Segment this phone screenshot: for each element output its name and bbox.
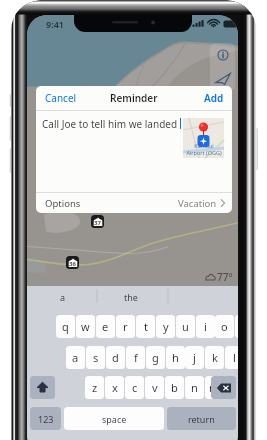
- staticText: Call Joe to tell him we landed: [42, 117, 178, 131]
- button[interactable]: Cancel: [36, 86, 86, 110]
- button[interactable]: Options: [36, 193, 232, 213]
- button[interactable]: b: [165, 376, 184, 399]
- button[interactable]: a: [66, 346, 85, 369]
- button[interactable]: o: [215, 315, 234, 338]
- button[interactable]: e: [96, 315, 115, 338]
- button[interactable]: m: [205, 376, 224, 399]
- button[interactable]: l: [225, 346, 238, 369]
- staticText: 77°: [217, 270, 233, 284]
- button[interactable]: Highway 36: [66, 256, 79, 269]
- staticText: g: [152, 350, 159, 365]
- staticText: o: [221, 319, 228, 334]
- staticText: k: [212, 350, 218, 365]
- button[interactable]: z: [85, 376, 104, 399]
- staticText: e: [102, 319, 109, 334]
- staticText: 123: [38, 413, 54, 425]
- staticText: Add: [204, 91, 224, 105]
- staticText: c: [132, 380, 138, 395]
- button[interactable]: t: [136, 315, 155, 338]
- button[interactable]: k: [205, 346, 224, 369]
- button[interactable]: 123: [30, 407, 61, 430]
- staticText: Reminder: [110, 91, 158, 105]
- staticText: d: [112, 350, 119, 365]
- staticText: v: [152, 380, 158, 395]
- staticText: u: [182, 319, 189, 334]
- staticText: a: [60, 291, 66, 303]
- button[interactable]: n: [185, 376, 204, 399]
- button[interactable]: v: [145, 376, 164, 399]
- staticText: 37: [94, 219, 101, 227]
- staticText: return: [188, 413, 215, 425]
- staticText: Airport (OGG): [186, 149, 222, 156]
- button[interactable]: u: [176, 315, 195, 338]
- staticText: i: [204, 319, 207, 334]
- button[interactable]: f: [126, 346, 145, 369]
- staticText: j: [193, 350, 196, 365]
- button[interactable]: Kahului Airport location: [183, 118, 224, 158]
- button[interactable]: c: [125, 376, 144, 399]
- staticText: z: [92, 380, 98, 395]
- staticText: w: [81, 319, 90, 334]
- staticText: q: [62, 319, 69, 334]
- staticText: 36: [69, 260, 76, 268]
- button[interactable]: y: [156, 315, 175, 338]
- staticText: Cancel: [45, 91, 77, 105]
- button[interactable]: r: [116, 315, 135, 338]
- staticText: 9:41: [46, 18, 64, 30]
- button[interactable]: g: [146, 346, 165, 369]
- staticText: Kahului: [194, 142, 214, 149]
- button[interactable]: return: [167, 407, 236, 430]
- staticText: Options: [45, 197, 81, 210]
- button[interactable]: space: [64, 407, 164, 430]
- staticText: y: [163, 319, 169, 334]
- button[interactable]: j: [185, 346, 204, 369]
- staticText: h: [172, 350, 179, 365]
- button[interactable]: Shift: [30, 376, 55, 399]
- staticText: Vacation: [178, 197, 217, 210]
- button[interactable]: Add: [195, 86, 232, 110]
- button[interactable]: w: [76, 315, 95, 338]
- staticText: l: [233, 350, 236, 365]
- staticText: m: [209, 380, 220, 395]
- button[interactable]: Map information: [210, 43, 235, 66]
- button[interactable]: p: [235, 315, 238, 338]
- staticText: f: [134, 350, 138, 365]
- button[interactable]: Show current location: [210, 66, 235, 91]
- staticText: a: [72, 350, 79, 365]
- button[interactable]: s: [86, 346, 105, 369]
- staticText: the: [124, 291, 138, 303]
- button[interactable]: Backspace: [211, 376, 236, 399]
- staticText: space: [102, 413, 127, 425]
- staticText: s: [93, 350, 99, 365]
- button[interactable]: Highway 37: [91, 215, 104, 228]
- button[interactable]: d: [106, 346, 125, 369]
- button[interactable]: q: [56, 315, 75, 338]
- staticText: t: [144, 319, 148, 334]
- staticText: x: [112, 380, 118, 395]
- button[interactable]: h: [166, 346, 185, 369]
- staticText: r: [123, 319, 128, 334]
- staticText: n: [191, 380, 198, 395]
- staticText: b: [171, 380, 178, 395]
- button[interactable]: i: [196, 315, 215, 338]
- button[interactable]: x: [105, 376, 124, 399]
